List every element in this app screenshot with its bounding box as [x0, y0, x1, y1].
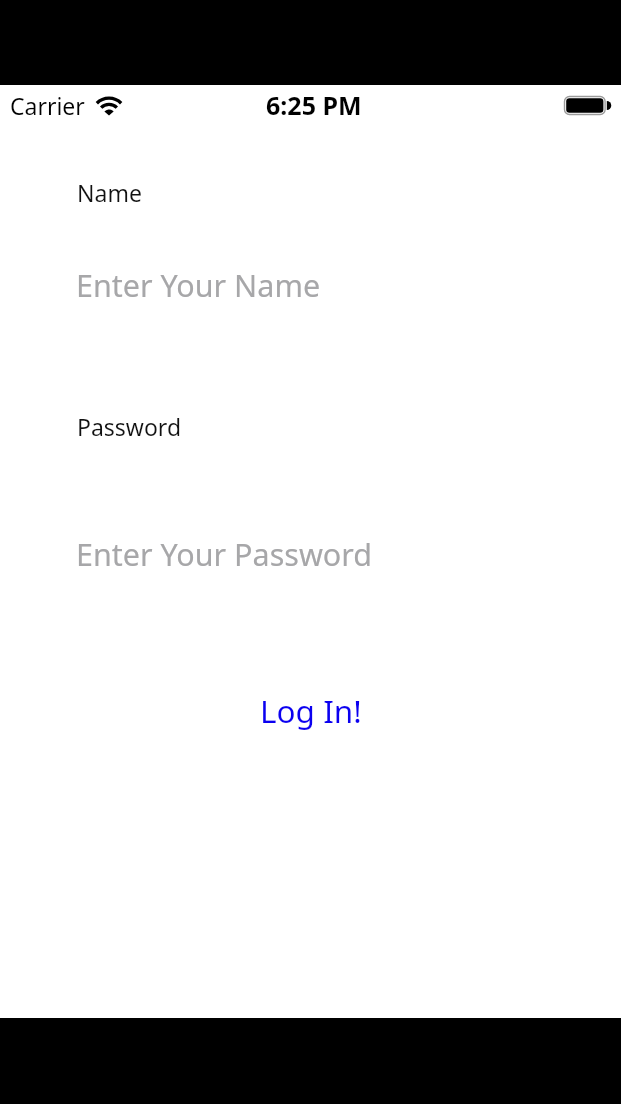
staticText: Name [77, 177, 142, 208]
button[interactable]: Enter Your Name [0, 257, 621, 317]
staticText: 6:25 PM [266, 88, 362, 122]
staticText: Log In! [260, 689, 362, 732]
staticText: Password [77, 411, 182, 442]
staticText: Enter Your Password [76, 533, 373, 575]
button[interactable]: Enter Your Password [0, 526, 621, 586]
staticText: Carrier [10, 90, 85, 121]
button[interactable]: Log In! [260, 689, 362, 732]
staticText: Enter Your Name [76, 264, 321, 306]
